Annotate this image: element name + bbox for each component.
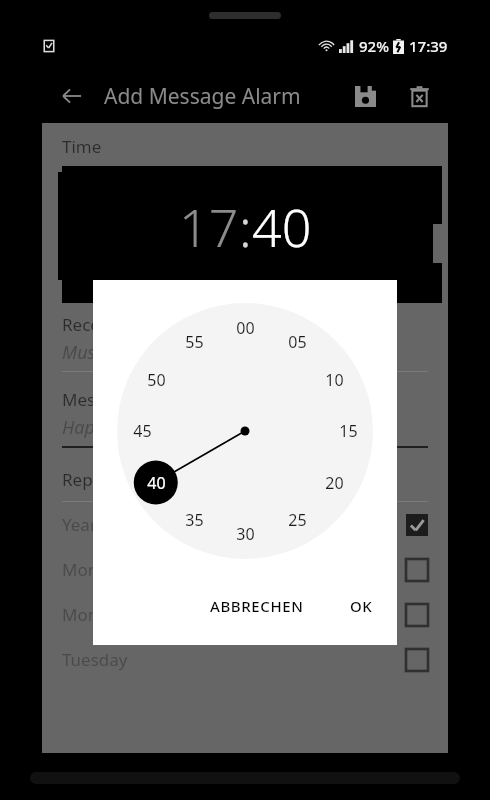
staticText: Receiver — [62, 313, 130, 336]
button[interactable]: Monthly — [42, 547, 448, 592]
staticText: 55 — [185, 331, 204, 353]
staticText: Monday — [62, 603, 127, 626]
button[interactable]: Back — [52, 76, 92, 116]
staticText: Monthly — [62, 558, 128, 581]
staticText: 20 — [325, 472, 344, 494]
staticText: Tuesday — [62, 648, 128, 671]
staticText: 15 — [339, 420, 358, 442]
staticText: 10 — [325, 369, 344, 391]
staticText: 45 — [133, 420, 152, 442]
staticText: Yearly — [62, 513, 110, 536]
button[interactable]: Tuesday — [42, 637, 448, 682]
staticText: 17 — [179, 191, 239, 262]
staticText: 35 — [185, 509, 204, 531]
button[interactable]: Yearly — [42, 502, 448, 547]
staticText: 30 — [236, 523, 255, 545]
staticText: Message — [62, 388, 133, 411]
staticText: ABBRECHEN — [210, 596, 304, 616]
button[interactable]: ABBRECHEN — [200, 590, 314, 622]
staticText: 25 — [288, 509, 307, 531]
staticText: 17:39 — [409, 36, 448, 56]
button[interactable]: Save — [346, 77, 384, 115]
button[interactable]: OK — [340, 590, 383, 622]
staticText: Happy Birthday — [62, 415, 187, 440]
staticText: Mustermann — [62, 340, 165, 365]
staticText: 50 — [147, 369, 166, 391]
staticText: OK — [350, 596, 373, 616]
staticText: 40 — [147, 472, 166, 494]
staticText: 00 — [236, 317, 255, 339]
button[interactable]: Monday — [42, 592, 448, 637]
staticText: 05 — [288, 331, 307, 353]
staticText: Repeat — [62, 468, 118, 491]
staticText: 40 — [252, 191, 312, 262]
button[interactable]: Delete — [400, 77, 438, 115]
staticText: 92% — [359, 36, 389, 56]
staticText: Add Message Alarm — [104, 82, 301, 111]
staticText: Time — [62, 135, 102, 158]
staticText: : — [239, 191, 252, 262]
